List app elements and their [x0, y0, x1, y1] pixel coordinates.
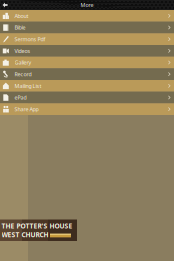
staticText: Sermons Pdf — [14, 36, 45, 43]
button[interactable]: Back — [0, 0, 10, 10]
staticText: Record — [14, 71, 31, 78]
staticText: WEST CHURCH — [1, 230, 48, 239]
staticText: More — [80, 1, 93, 9]
staticText: Bible — [14, 24, 25, 31]
button[interactable]: Videos — [0, 45, 174, 57]
button[interactable]: Mailing List — [0, 80, 174, 92]
button[interactable]: Sermons Pdf — [0, 33, 174, 45]
button[interactable]: Share App — [0, 103, 174, 115]
staticText: About — [14, 12, 28, 19]
staticText: ePad — [14, 94, 26, 101]
button[interactable]: Gallery — [0, 57, 174, 68]
staticText: Videos — [14, 47, 30, 54]
button[interactable]: Record — [0, 68, 174, 80]
button[interactable]: ePad — [0, 92, 174, 103]
staticText: THE POTTER'S HOUSE — [1, 221, 72, 230]
button[interactable]: Bible — [0, 22, 174, 33]
staticText: Share App — [14, 106, 38, 113]
staticText: Gallery — [14, 59, 31, 66]
staticText: Mailing List — [14, 82, 41, 89]
button[interactable]: About — [0, 10, 174, 22]
